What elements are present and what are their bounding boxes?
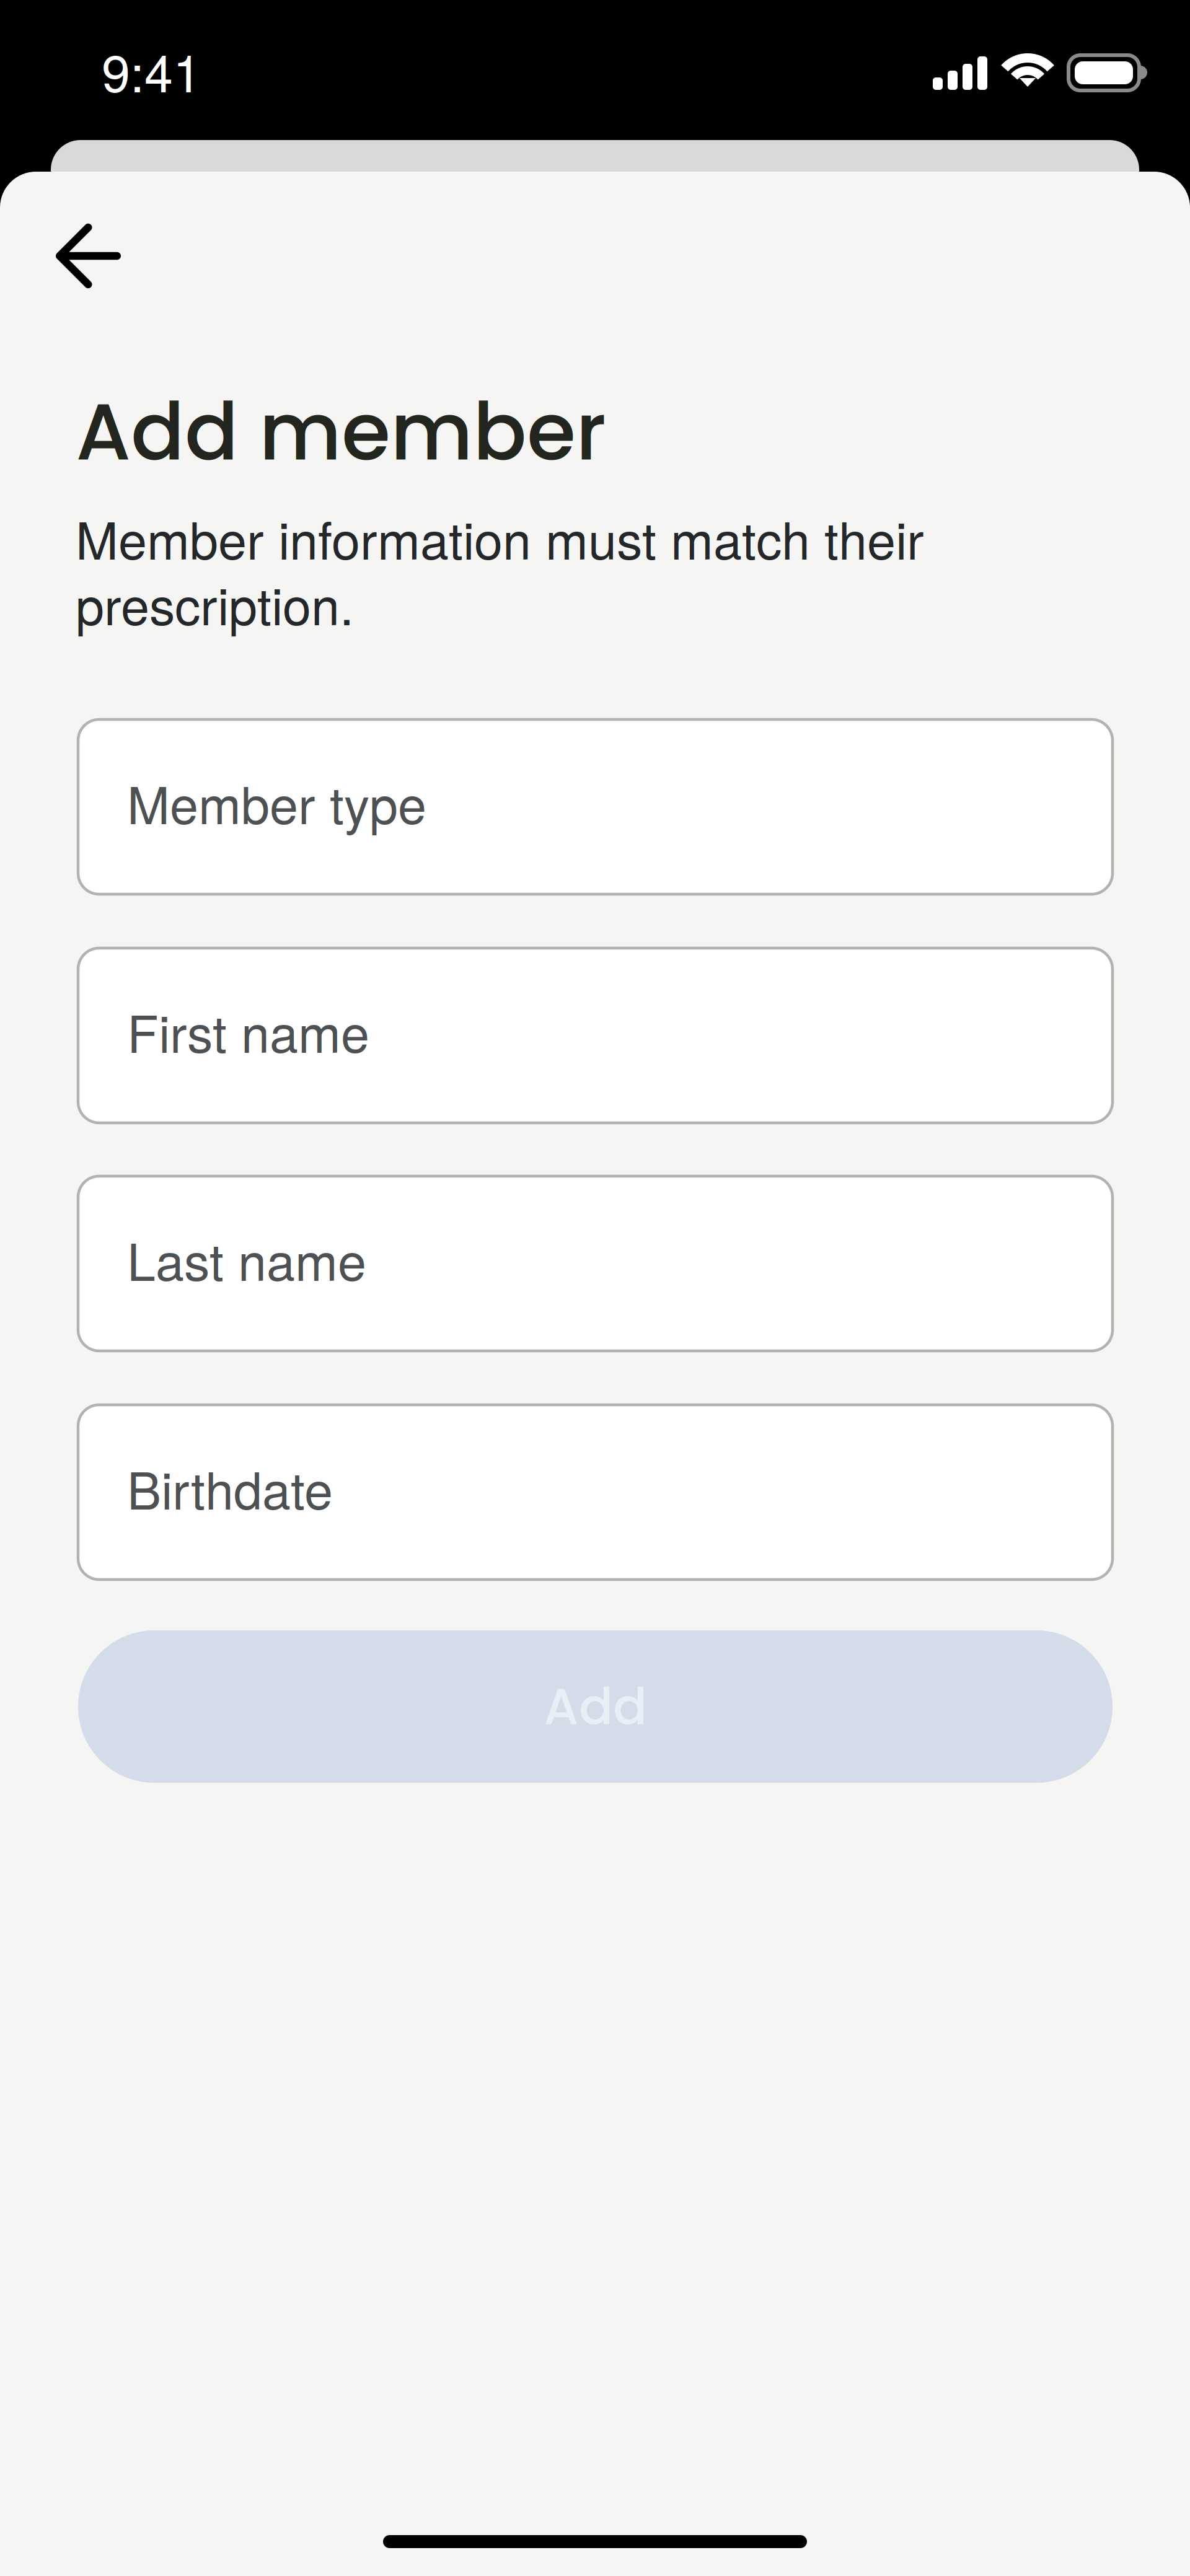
staticText: Add [544, 1671, 647, 1742]
staticText: 9:41 [102, 33, 201, 107]
staticText: Member information must match their [76, 501, 924, 574]
staticText: Last name [127, 1222, 366, 1295]
button[interactable]: Last name [78, 1176, 1113, 1351]
staticText: Add member [76, 376, 606, 487]
button[interactable]: Member type [78, 719, 1113, 894]
staticText: Birthdate [127, 1451, 333, 1524]
button[interactable]: First name [78, 948, 1113, 1123]
staticText: Member type [127, 765, 426, 839]
button[interactable]: Birthdate [78, 1405, 1113, 1580]
button[interactable]: Add [78, 1630, 1113, 1783]
staticText: prescription. [76, 566, 354, 640]
button[interactable]: Back [30, 193, 148, 317]
staticText: First name [127, 994, 369, 1067]
